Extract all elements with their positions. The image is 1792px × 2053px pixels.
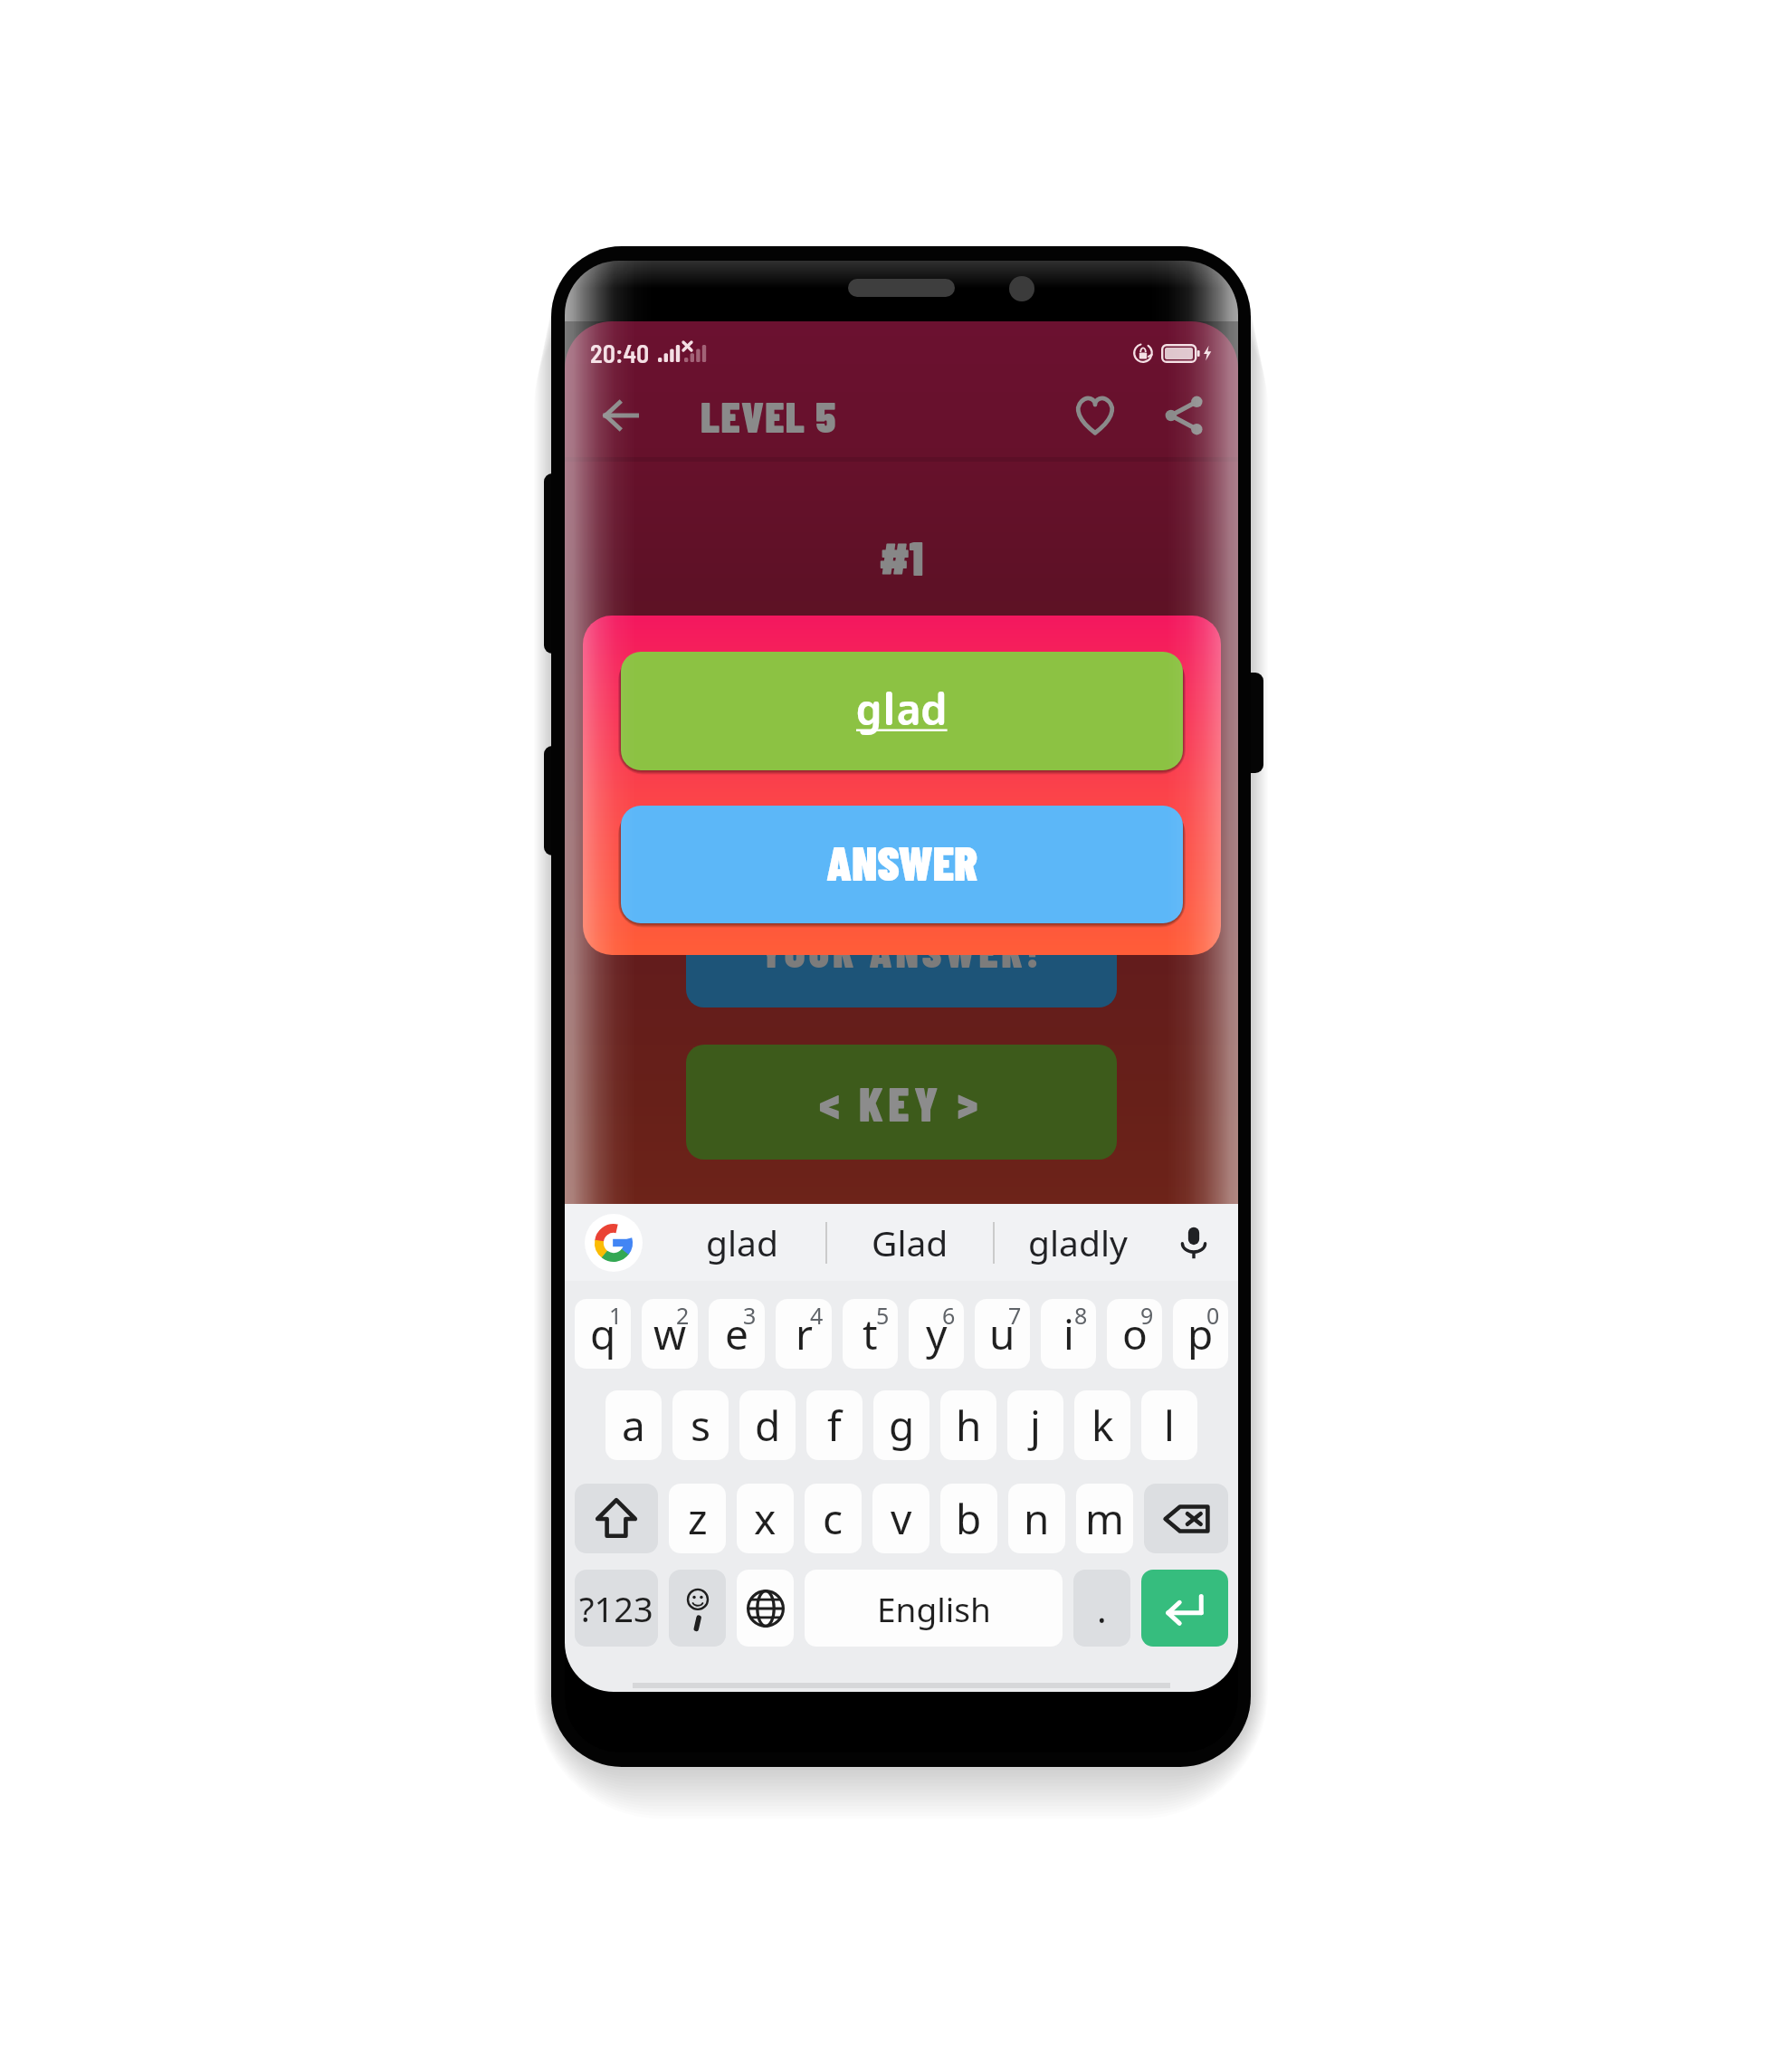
button[interactable]: d [739,1390,796,1460]
button[interactable]: < KEY > [686,1045,1117,1160]
staticText: o [1122,1305,1148,1362]
button[interactable]: Glad [827,1204,993,1281]
staticText: s [691,1397,711,1454]
button[interactable]: z [669,1484,726,1553]
button[interactable]: Share [1148,378,1222,453]
staticText: Glad [872,1218,948,1266]
button[interactable]: gladly [995,1204,1160,1281]
button[interactable]: t [843,1299,898,1369]
button[interactable]: g [873,1390,929,1460]
staticText: e [725,1305,748,1362]
button[interactable]: ANSWER [621,806,1183,923]
staticText: . [1097,1584,1107,1633]
staticText: glad [706,1218,778,1266]
button[interactable]: m [1076,1484,1133,1553]
staticText: x [754,1490,777,1547]
staticText: English [877,1586,991,1631]
button[interactable]: v [872,1484,929,1553]
staticText: z [688,1490,708,1547]
staticText: t [863,1305,878,1362]
staticText: y [926,1305,948,1362]
button[interactable]: Emoji [669,1570,726,1647]
button[interactable]: YOUR ANSWER! [686,893,1117,1007]
button[interactable]: Backspace [1144,1484,1228,1553]
button[interactable]: r [776,1299,832,1369]
button[interactable]: ?123 [575,1570,658,1647]
staticText: q [590,1305,616,1362]
staticText: i [1063,1305,1074,1362]
button[interactable]: x [737,1484,794,1553]
staticText: c [823,1490,844,1547]
staticText: LEVEL 5 [701,389,837,442]
staticText: 2 [676,1300,690,1331]
staticText: k [1091,1397,1114,1454]
staticText: v [891,1490,912,1547]
staticText: u [989,1305,1015,1362]
staticText: w [653,1305,687,1362]
button[interactable]: . [1073,1570,1130,1647]
staticText: d [755,1397,781,1454]
staticText: 3 [743,1300,757,1331]
staticText: f [827,1397,842,1454]
button[interactable]: q [575,1299,631,1369]
staticText: ANSWER [826,833,978,891]
button[interactable]: s [672,1390,729,1460]
staticText: m [1085,1490,1125,1547]
staticText: YOUR ANSWER! [760,924,1043,977]
button[interactable]: j [1007,1390,1063,1460]
staticText: 6 [942,1300,956,1331]
button[interactable]: Favourite [1058,378,1132,453]
staticText: glad [856,678,948,739]
button[interactable]: o [1107,1299,1162,1369]
staticText: 7 [1008,1300,1022,1331]
staticText: ?123 [579,1585,653,1632]
button[interactable]: k [1074,1390,1130,1460]
staticText: n [1024,1490,1050,1547]
button[interactable]: Voice input [1168,1217,1220,1269]
staticText: 4 [810,1300,824,1331]
button[interactable]: Google Search [585,1214,643,1272]
staticText: l [1164,1397,1175,1454]
button[interactable]: Enter [1141,1570,1228,1647]
staticText: gladly [1028,1218,1128,1266]
button[interactable]: English [805,1570,1063,1647]
button[interactable]: a [605,1390,662,1460]
button[interactable]: n [1008,1484,1065,1553]
button[interactable]: e [709,1299,765,1369]
staticText: 8 [1074,1300,1088,1331]
staticText: 0 [1206,1300,1220,1331]
button[interactable]: l [1141,1390,1197,1460]
button[interactable]: glad [621,652,1183,770]
staticText: 20:40 [590,338,650,368]
staticText: h [956,1397,982,1454]
button[interactable]: i [1041,1299,1096,1369]
button[interactable]: c [805,1484,862,1553]
button[interactable]: p [1173,1299,1228,1369]
button[interactable]: b [940,1484,997,1553]
button[interactable]: u [975,1299,1030,1369]
button[interactable]: Shift [575,1484,658,1553]
staticText: j [1030,1397,1041,1454]
button[interactable]: w [642,1299,698,1369]
staticText: 5 [876,1300,890,1331]
staticText: 9 [1140,1300,1154,1331]
staticText: b [956,1490,982,1547]
staticText: a [622,1397,645,1454]
staticText: p [1187,1305,1214,1362]
staticText: g [889,1397,915,1454]
button[interactable]: y [909,1299,964,1369]
button[interactable]: Back [586,381,655,450]
button[interactable]: glad [659,1204,825,1281]
staticText: r [796,1305,813,1362]
staticText: 1 [609,1300,623,1331]
button[interactable]: Change keyboard language [737,1570,794,1647]
button[interactable]: f [806,1390,863,1460]
staticText: < KEY > [819,1074,984,1131]
staticText: #1 [565,529,1238,585]
button[interactable]: h [940,1390,996,1460]
